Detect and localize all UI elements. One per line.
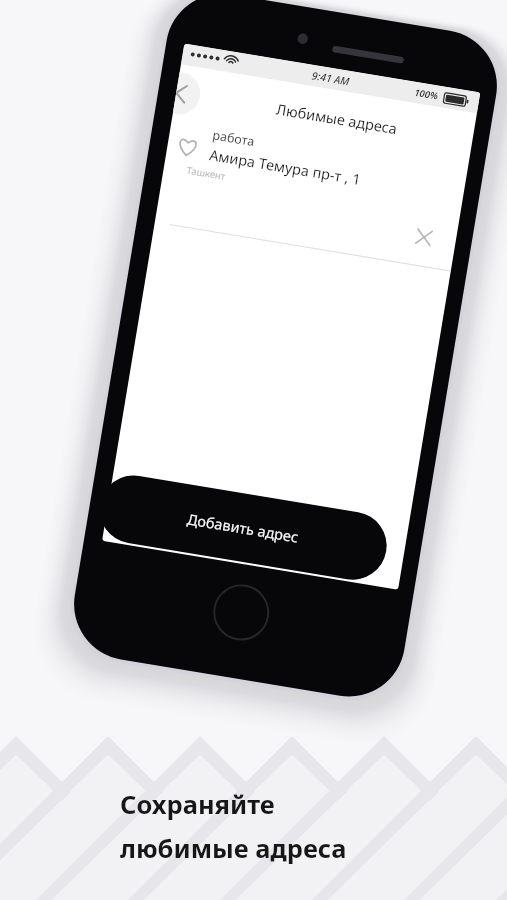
button[interactable]: Сохраняйте любимые адреса bbox=[0, 0, 507, 900]
